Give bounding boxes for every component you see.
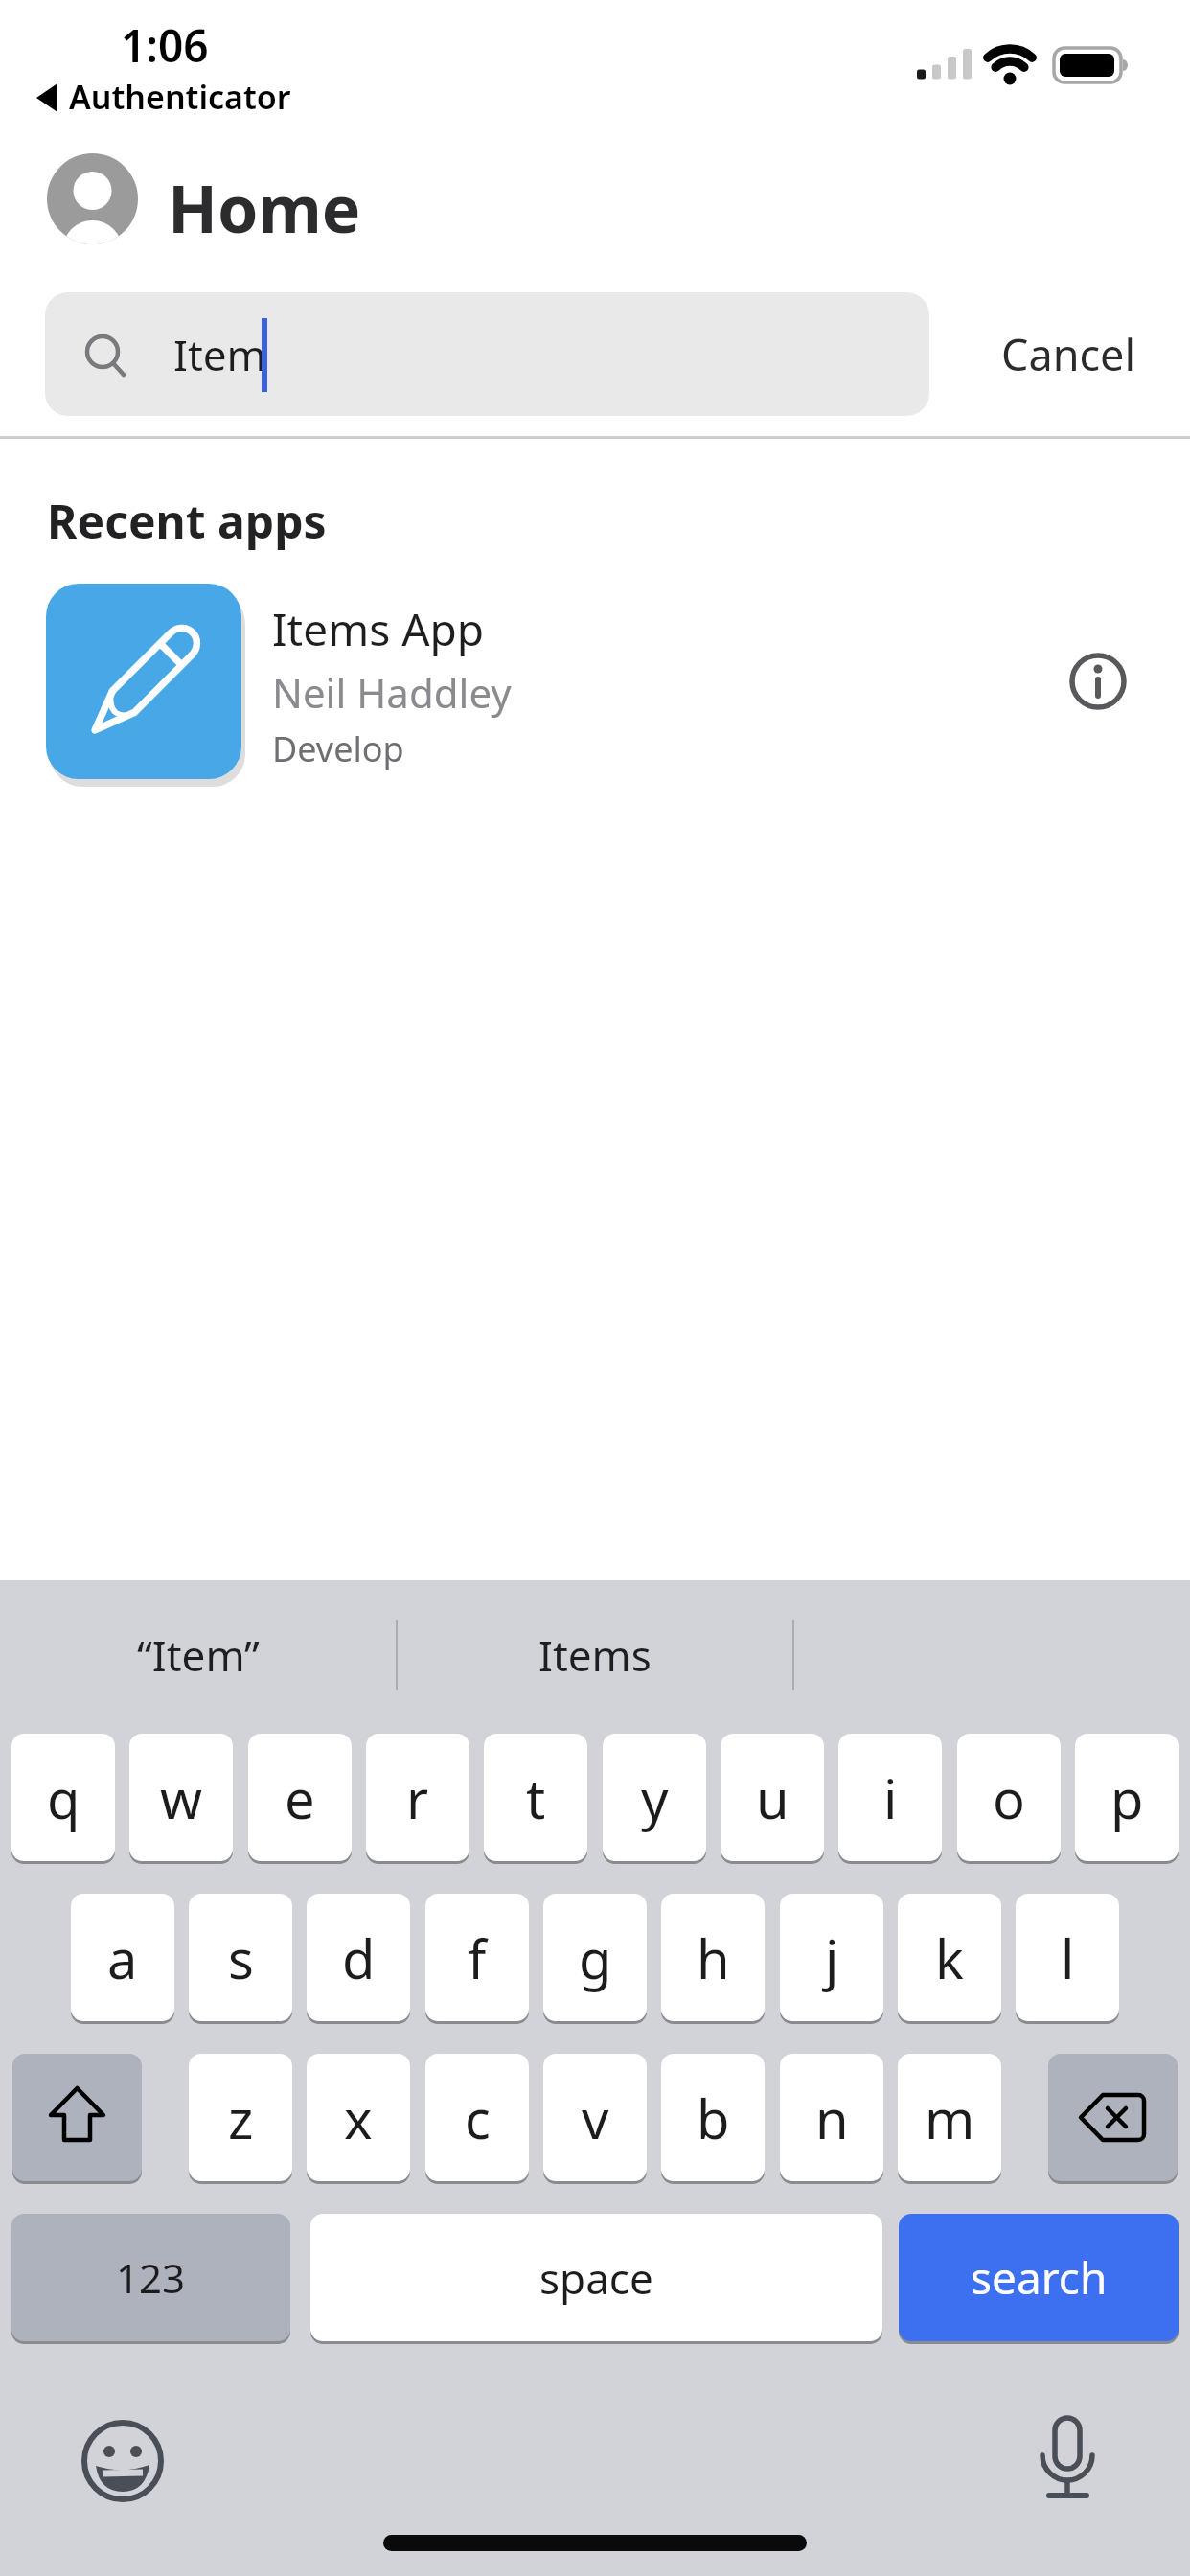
staticText: space (539, 2249, 653, 2307)
button[interactable]: b (661, 2054, 765, 2181)
button[interactable]: m (898, 2054, 1001, 2181)
staticText: k (935, 1921, 964, 1994)
staticText: q (47, 1761, 80, 1834)
button[interactable]: j (780, 1894, 883, 2021)
button[interactable]: “Item” (57, 1621, 339, 1689)
staticText: m (925, 2081, 975, 2154)
staticText: Cancel (1001, 325, 1136, 383)
button[interactable] (29, 570, 1035, 791)
staticText: u (756, 1761, 790, 1834)
button[interactable]: Cancel (1001, 320, 1183, 387)
staticText: r (406, 1761, 429, 1834)
staticText: 123 (116, 2250, 186, 2305)
staticText: a (107, 1921, 138, 1994)
button[interactable] (47, 153, 138, 244)
button[interactable]: s (189, 1894, 292, 2021)
button[interactable]: Items (454, 1621, 736, 1689)
staticText: o (993, 1761, 1025, 1834)
button[interactable]: Item (45, 292, 929, 416)
staticText: Item (173, 326, 266, 383)
staticText: c (465, 2081, 491, 2154)
staticText: d (342, 1921, 376, 1994)
button[interactable]: l (1016, 1894, 1119, 2021)
staticText: h (697, 1921, 730, 1994)
staticText: 1:06 (121, 15, 209, 75)
button[interactable]: d (307, 1894, 410, 2021)
staticText: y (641, 1761, 669, 1834)
staticText: w (160, 1761, 203, 1834)
button[interactable]: n (780, 2054, 883, 2181)
staticText: n (815, 2081, 849, 2154)
staticText: f (468, 1921, 487, 1994)
button[interactable]: i (838, 1734, 942, 1861)
staticText: i (883, 1761, 898, 1834)
staticText: Home (168, 163, 361, 249)
button[interactable]: r (366, 1734, 469, 1861)
button[interactable]: v (543, 2054, 647, 2181)
button[interactable]: p (1075, 1734, 1179, 1861)
staticText: v (582, 2081, 609, 2154)
button[interactable]: z (189, 2054, 292, 2181)
button[interactable] (12, 2054, 142, 2181)
button[interactable]: q (11, 1734, 115, 1861)
staticText: z (228, 2081, 254, 2154)
staticText: Neil Haddley (272, 665, 512, 720)
button[interactable]: k (898, 1894, 1001, 2021)
button[interactable]: a (71, 1894, 174, 2021)
button[interactable]: f (425, 1894, 529, 2021)
staticText: Items (538, 1626, 652, 1684)
staticText: s (228, 1921, 254, 1994)
staticText: b (697, 2081, 730, 2154)
staticText: e (285, 1761, 315, 1834)
button[interactable]: g (543, 1894, 647, 2021)
button[interactable]: w (129, 1734, 233, 1861)
staticText: j (825, 1921, 839, 1994)
staticText: x (344, 2081, 373, 2154)
button[interactable]: t (484, 1734, 587, 1861)
button[interactable]: o (957, 1734, 1061, 1861)
staticText: Authenticator (69, 75, 291, 119)
staticText: Items App (272, 599, 485, 659)
button[interactable]: 123 (11, 2214, 290, 2341)
staticText: “Item” (137, 1626, 260, 1684)
button[interactable]: e (248, 1734, 352, 1861)
button[interactable] (1060, 643, 1136, 720)
staticText: search (971, 2247, 1108, 2308)
button[interactable]: c (425, 2054, 529, 2181)
button[interactable]: y (603, 1734, 706, 1861)
staticText: Develop (272, 725, 404, 772)
staticText: p (1110, 1761, 1144, 1834)
button[interactable] (1023, 2405, 1115, 2511)
staticText: Recent apps (47, 490, 327, 552)
button[interactable] (77, 2415, 169, 2507)
button[interactable]: space (310, 2214, 882, 2341)
staticText: l (1061, 1921, 1075, 1994)
button[interactable]: search (899, 2214, 1179, 2341)
button[interactable]: h (661, 1894, 765, 2021)
staticText: t (526, 1761, 546, 1834)
button[interactable]: x (307, 2054, 410, 2181)
button[interactable] (1048, 2054, 1178, 2181)
button[interactable]: u (721, 1734, 824, 1861)
staticText: g (579, 1921, 612, 1994)
